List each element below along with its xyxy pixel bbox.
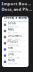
button[interactable]: Books — [2, 22, 28, 28]
staticText: Links — [8, 52, 14, 56]
staticText: EPUB, PDF — [8, 25, 19, 28]
staticText: RSS, Atom — [8, 31, 18, 34]
button[interactable]: News — [2, 28, 28, 34]
staticText: Import Books, News, — [1, 1, 33, 6]
staticText: Choose a source — [4, 16, 28, 19]
staticText: Pages, Word — [8, 37, 20, 40]
staticText: Docs, and Photos — [1, 6, 33, 12]
button[interactable]: Links — [2, 53, 28, 59]
staticText: Your library stays private — [4, 19, 28, 23]
staticText: Documents — [8, 34, 22, 37]
button[interactable]: Notes — [2, 59, 28, 65]
staticText: Photos — [8, 40, 18, 44]
staticText: iCloud Drive — [8, 50, 21, 53]
staticText: Plain text — [8, 62, 18, 65]
staticText: Safari, Web — [8, 56, 20, 59]
staticText: Files — [8, 46, 13, 50]
button[interactable]: Photos — [2, 40, 28, 46]
button[interactable]: Files — [2, 46, 28, 53]
button[interactable]: Documents — [2, 34, 28, 40]
staticText: Camera Roll — [8, 43, 20, 46]
staticText: Notes — [8, 59, 15, 62]
staticText: News — [8, 28, 14, 31]
staticText: Books — [8, 22, 16, 25]
